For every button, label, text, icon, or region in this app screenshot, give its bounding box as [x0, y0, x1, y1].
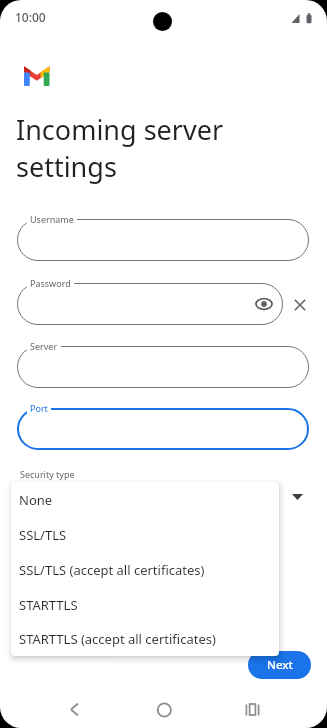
button[interactable]: SSL/TLS (accept all certificates): [11, 552, 279, 587]
staticText: Security type: [20, 468, 75, 480]
button[interactable]: [150, 695, 180, 725]
staticText: STARTTLS (accept all certificates): [19, 630, 216, 648]
staticText: Username: [30, 213, 74, 225]
button[interactable]: Next: [248, 651, 311, 679]
staticText: Server: [30, 340, 58, 352]
button[interactable]: [17, 283, 283, 325]
staticText: Password: [30, 277, 71, 289]
button[interactable]: [17, 219, 309, 261]
staticText: Next: [267, 657, 293, 673]
button[interactable]: [17, 346, 309, 388]
staticText: Incoming server settings: [16, 111, 224, 185]
button[interactable]: [294, 299, 306, 311]
button[interactable]: [60, 695, 90, 725]
button[interactable]: STARTTLS (accept all certificates): [11, 622, 279, 656]
staticText: Port: [30, 402, 48, 414]
staticText: SSL/TLS: [19, 526, 67, 544]
staticText: STARTTLS: [19, 596, 78, 614]
staticText: SSL/TLS (accept all certificates): [19, 561, 205, 579]
button[interactable]: [17, 408, 309, 450]
staticText: 10:00: [15, 9, 46, 25]
button[interactable]: STARTTLS: [11, 587, 279, 622]
button[interactable]: None: [11, 482, 279, 517]
button[interactable]: [238, 695, 268, 725]
staticText: None: [19, 491, 53, 509]
button[interactable]: SSL/TLS: [11, 517, 279, 552]
